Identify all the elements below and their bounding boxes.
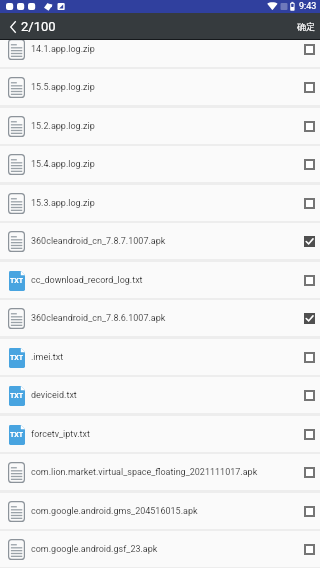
button[interactable]: TXT xyxy=(0,339,320,375)
button[interactable]: 15.5.app.log.zip xyxy=(0,69,320,105)
staticText: deviceid.txt xyxy=(31,390,296,401)
staticText: 2/100 xyxy=(21,19,56,34)
staticText: 14.1.app.log.zip xyxy=(31,44,296,55)
button[interactable]: Select item xyxy=(302,465,317,480)
button[interactable]: Select item xyxy=(302,350,317,365)
button[interactable]: com.google.android.gms_204516015.apk xyxy=(0,493,320,529)
staticText: TXT xyxy=(10,392,24,400)
button[interactable]: Select item xyxy=(302,311,317,326)
button[interactable]: Select item xyxy=(302,427,317,442)
button[interactable]: TXT xyxy=(0,377,320,413)
button[interactable]: Select item xyxy=(302,119,317,134)
button[interactable]: Select item xyxy=(302,196,317,211)
button[interactable]: 360cleandroid_cn_7.8.7.1007.apk xyxy=(0,223,320,259)
button[interactable]: com.lion.market.virtual_space_floating_2… xyxy=(0,454,320,490)
button[interactable]: Select item xyxy=(302,157,317,172)
button[interactable]: Select item xyxy=(302,234,317,249)
staticText: TXT xyxy=(10,431,24,439)
button[interactable]: Select item xyxy=(302,273,317,288)
button[interactable]: Back xyxy=(0,19,144,34)
button[interactable]: Select item xyxy=(302,80,317,95)
staticText: TXT xyxy=(10,277,24,285)
staticText: 确定 xyxy=(297,21,315,32)
button[interactable]: Select item xyxy=(302,388,317,403)
staticText: com.google.android.gsf_23.apk xyxy=(31,544,296,555)
staticText: 15.4.app.log.zip xyxy=(31,159,296,170)
button[interactable]: com.google.android.gsf_23.apk xyxy=(0,531,320,567)
staticText: 15.2.app.log.zip xyxy=(31,121,296,132)
button[interactable]: Select item xyxy=(302,542,317,557)
button[interactable]: 15.4.app.log.zip xyxy=(0,146,320,182)
staticText: .imei.txt xyxy=(31,352,296,363)
staticText: com.google.android.gms_204516015.apk xyxy=(31,506,296,517)
button[interactable]: 15.3.app.log.zip xyxy=(0,185,320,221)
button[interactable]: 15.2.app.log.zip xyxy=(0,108,320,144)
button[interactable]: 360cleandroid_cn_7.8.6.1007.apk xyxy=(0,300,320,336)
button[interactable]: 14.1.app.log.zip xyxy=(0,39,320,67)
button[interactable]: TXT xyxy=(0,262,320,298)
button[interactable]: 确定 xyxy=(283,16,320,37)
button[interactable]: Select item xyxy=(302,504,317,519)
button[interactable]: Select item xyxy=(302,42,317,57)
staticText: 15.5.app.log.zip xyxy=(31,82,296,93)
button[interactable]: TXT xyxy=(0,416,320,452)
staticText: TXT xyxy=(10,354,24,362)
staticText: 15.3.app.log.zip xyxy=(31,198,296,209)
other: Back xyxy=(10,21,16,33)
staticText: 360cleandroid_cn_7.8.7.1007.apk xyxy=(31,236,296,247)
staticText: 9:43 xyxy=(299,1,317,12)
staticText: cc_download_record_log.txt xyxy=(31,275,296,286)
staticText: forcetv_iptv.txt xyxy=(31,429,296,440)
staticText: com.lion.market.virtual_space_floating_2… xyxy=(31,467,296,478)
staticText: 360cleandroid_cn_7.8.6.1007.apk xyxy=(31,313,296,324)
